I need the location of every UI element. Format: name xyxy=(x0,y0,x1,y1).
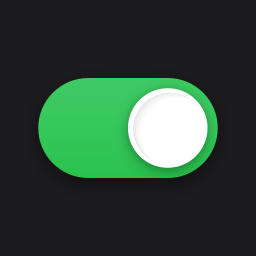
button[interactable]: Toggle, on xyxy=(38,78,218,178)
